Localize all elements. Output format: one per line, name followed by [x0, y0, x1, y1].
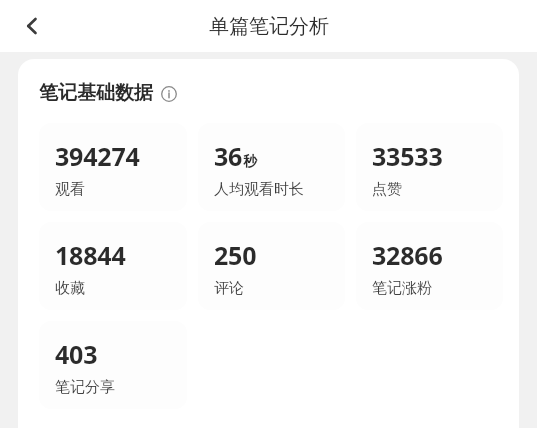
button[interactable]: 403	[39, 321, 187, 409]
staticText: 观看	[55, 180, 85, 199]
staticText: 250	[214, 238, 257, 272]
staticText: 33533	[372, 139, 443, 173]
staticText: 收藏	[55, 279, 85, 298]
staticText: 18844	[55, 238, 126, 272]
staticText: 秒	[243, 153, 257, 171]
staticText: 403	[55, 337, 98, 371]
staticText: 评论	[214, 279, 244, 298]
staticText: 36	[214, 139, 243, 173]
button[interactable]: Back	[10, 4, 54, 48]
staticText: 394274	[55, 139, 140, 173]
staticText: 单篇笔记分析	[209, 14, 329, 39]
staticText: 点赞	[372, 180, 402, 199]
button[interactable]: 32866	[356, 222, 503, 310]
button[interactable]: Information	[161, 86, 177, 102]
staticText: 人均观看时长	[214, 180, 304, 199]
staticText: 笔记分享	[55, 378, 115, 397]
staticText: 笔记基础数据	[39, 81, 153, 105]
button[interactable]: 394274	[39, 123, 187, 211]
button[interactable]: 18844	[39, 222, 187, 310]
button[interactable]: 36	[198, 123, 345, 211]
button[interactable]: 250	[198, 222, 345, 310]
staticText: 笔记涨粉	[372, 279, 432, 298]
button[interactable]: 33533	[356, 123, 503, 211]
staticText: 32866	[372, 238, 443, 272]
